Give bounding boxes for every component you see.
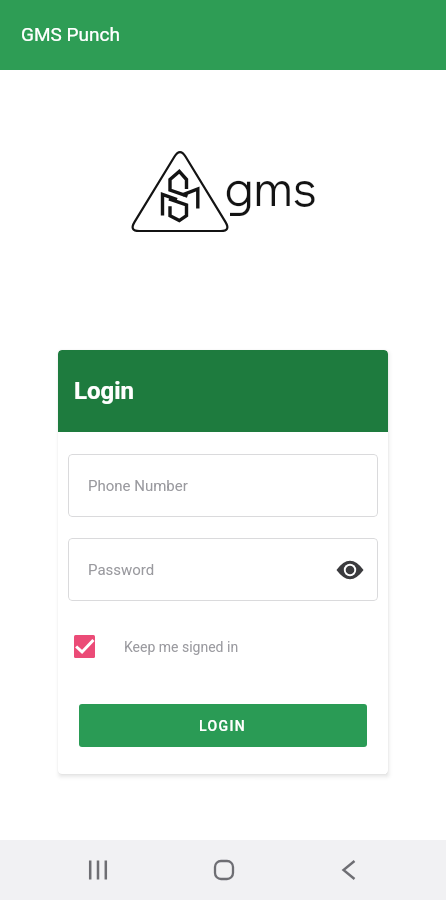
staticText: GMS Punch [21,23,120,45]
staticText: Keep me signed in [124,639,239,655]
button[interactable]: GMS Punch [0,0,446,70]
button[interactable]: Phone Number [68,454,378,517]
staticText: Password [88,561,155,579]
staticText: Phone Number [88,477,188,495]
button[interactable]: Show password [334,554,366,586]
button[interactable]: Home [191,840,256,900]
button[interactable]: Password [68,538,378,601]
staticText: LOGIN [199,718,247,734]
button[interactable]: Keep me signed in [74,635,95,658]
staticText: gms [225,153,317,220]
staticText: Login [74,377,135,405]
button[interactable]: LOGIN [79,704,367,747]
button[interactable]: Recents [65,840,130,900]
button[interactable]: Back [316,840,381,900]
